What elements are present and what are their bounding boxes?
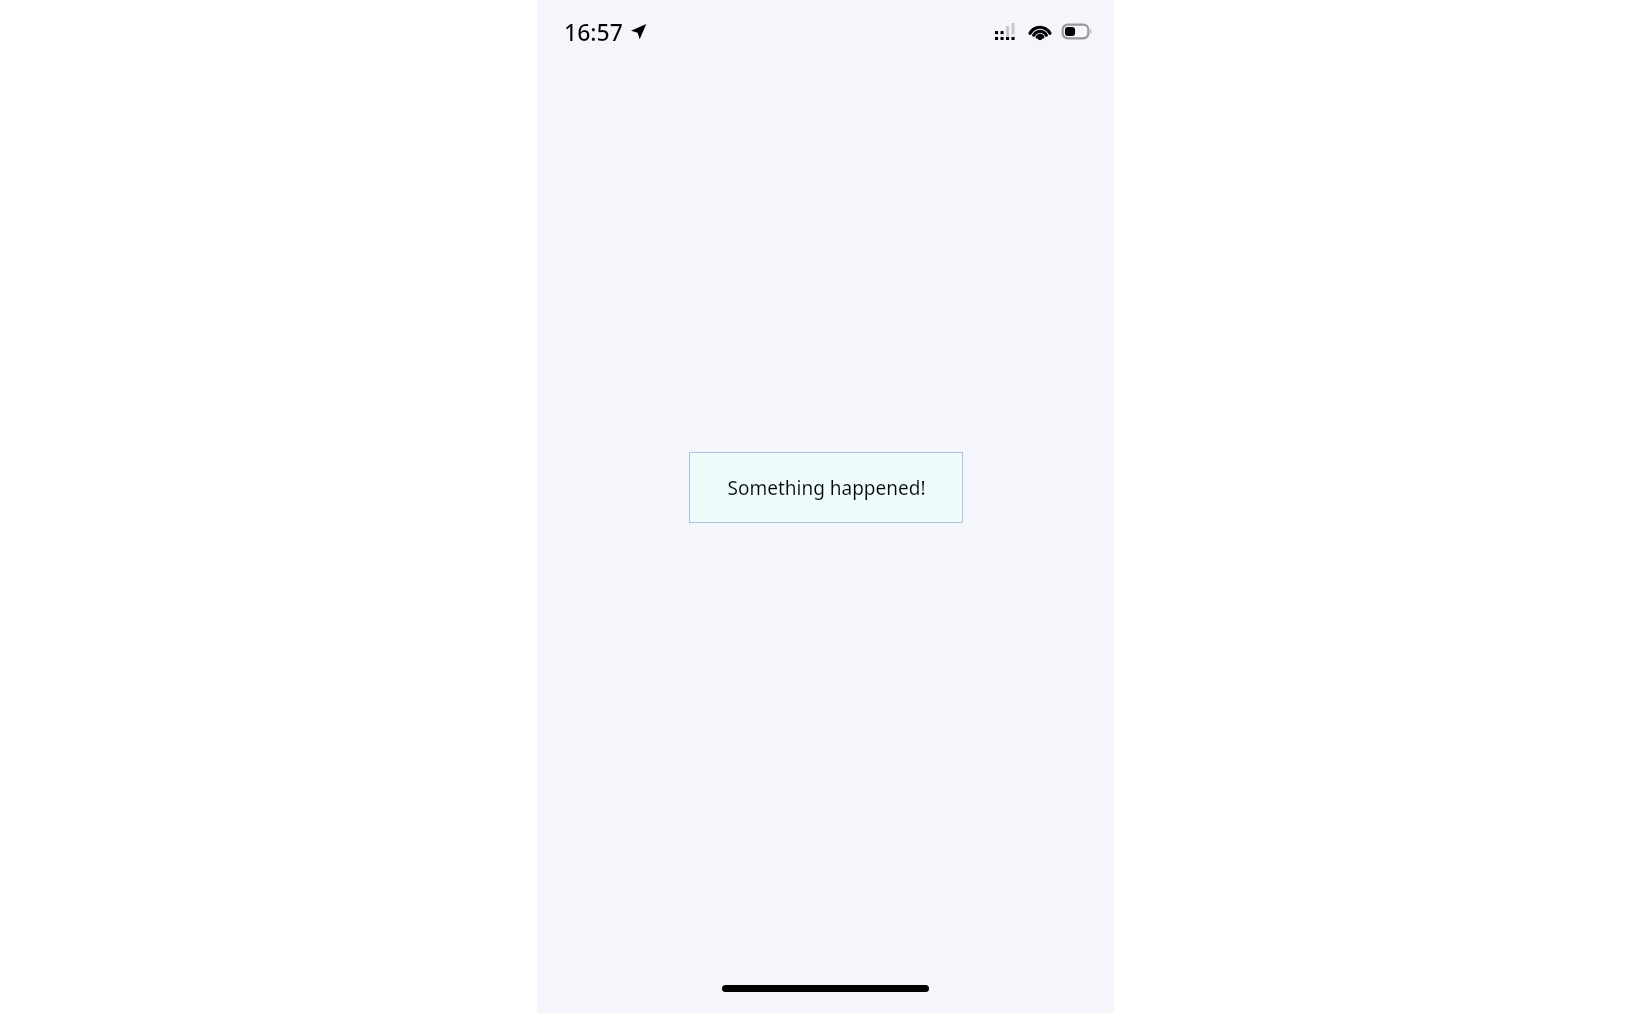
button[interactable]: Something happened! (689, 452, 963, 523)
staticText: Something happened! (727, 475, 926, 501)
staticText: 16:57 (564, 16, 623, 47)
